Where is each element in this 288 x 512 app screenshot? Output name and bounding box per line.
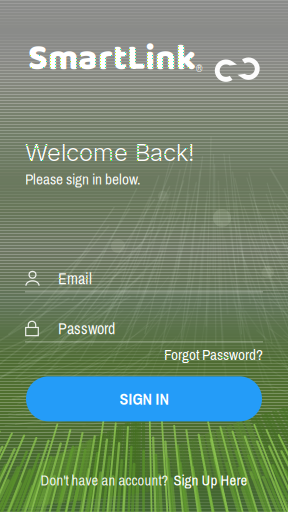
staticText: Email xyxy=(58,268,92,289)
staticText: Please sign in below. xyxy=(25,169,140,189)
staticText: Welcome Back! xyxy=(25,138,194,167)
staticText: SIGN IN xyxy=(119,388,168,410)
staticText: SmartLink xyxy=(28,30,196,88)
staticText: Password xyxy=(58,318,115,339)
staticText: Forgot Password? xyxy=(164,344,263,365)
button[interactable]: Forgot Password? xyxy=(25,342,263,366)
staticText: ® xyxy=(196,61,202,76)
button[interactable]: Sign Up Here xyxy=(173,470,247,490)
staticText: Sign Up Here xyxy=(173,470,247,490)
staticText: Don't have an account? xyxy=(40,470,168,490)
button[interactable]: SIGN IN xyxy=(26,376,262,421)
